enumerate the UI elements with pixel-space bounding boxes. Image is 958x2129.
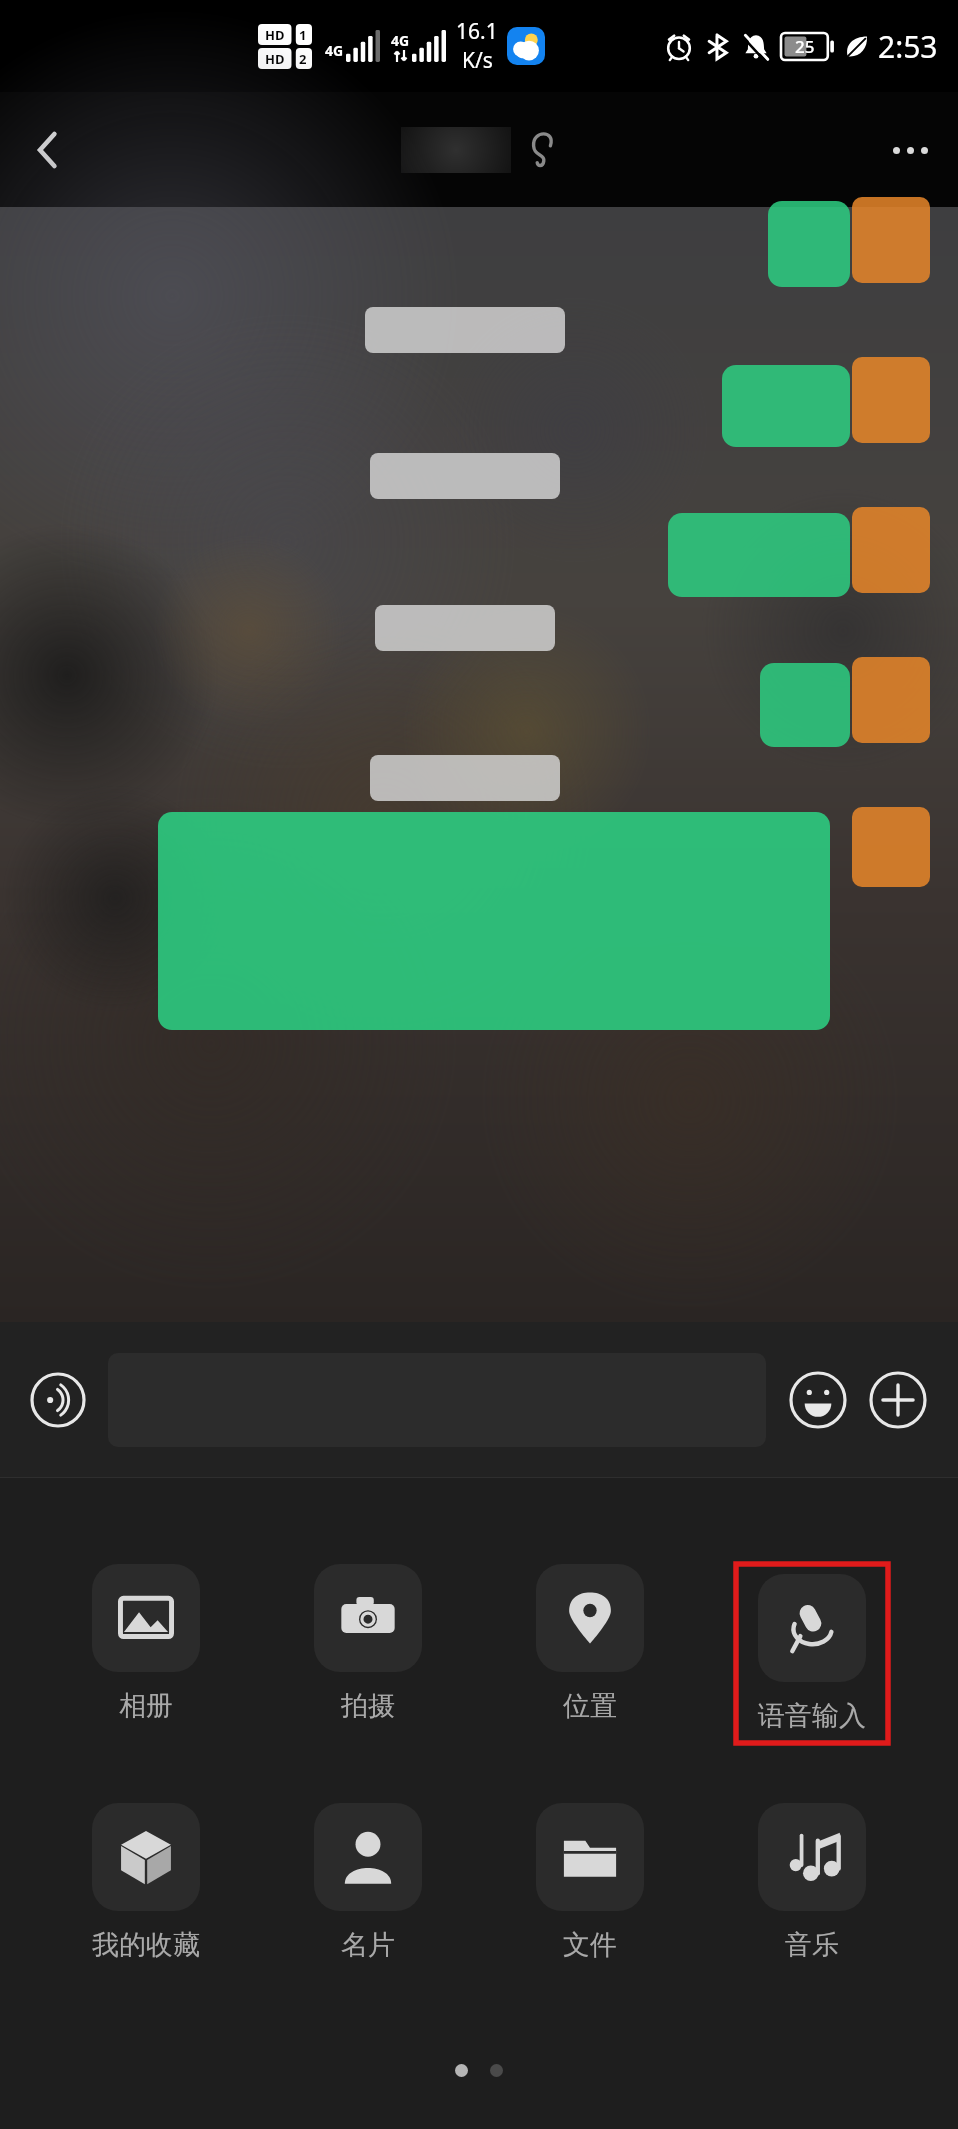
staticText: K/s [462,46,493,75]
button[interactable] [668,513,850,597]
button[interactable]: Back [0,102,96,198]
button[interactable] [158,812,830,1030]
button[interactable] [760,663,850,747]
button[interactable]: 文件 [536,1803,644,1962]
staticText: 16.1 [456,17,498,46]
staticText: 25 [795,35,815,58]
staticText: 4G [391,31,410,50]
button[interactable]: 我的收藏 [92,1803,200,1962]
button[interactable]: 拍摄 [314,1564,422,1723]
staticText: 文件 [563,1928,617,1962]
button[interactable]: Voice message [22,1364,94,1436]
button[interactable]: More functions [860,1362,936,1438]
button[interactable]: 音乐 [758,1803,866,1962]
button[interactable] [722,365,850,447]
staticText: HD [265,26,285,44]
staticText: 我的收藏 [92,1928,200,1962]
button[interactable]: 名片 [314,1803,422,1962]
staticText: 2:53 [878,26,938,67]
staticText: 名片 [341,1928,395,1962]
button[interactable]: More options [862,102,958,198]
staticText: 音乐 [785,1928,839,1962]
staticText: 2 [299,50,307,68]
staticText: HD [265,50,285,68]
staticText: 语音输入 [758,1699,866,1733]
staticText: 位置 [563,1689,617,1723]
button[interactable] [768,201,850,287]
button[interactable]: 位置 [536,1564,644,1723]
button[interactable]: Emoji [780,1362,856,1438]
staticText: 相册 [119,1689,173,1723]
staticText: 拍摄 [341,1689,395,1723]
button[interactable]: 语音输入 [758,1574,866,1733]
button[interactable]: 相册 [92,1564,200,1723]
staticText: 4G [325,41,344,60]
staticText: 1 [299,26,307,44]
